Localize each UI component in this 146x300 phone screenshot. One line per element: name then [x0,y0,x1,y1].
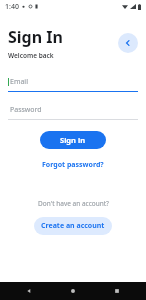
staticText: 1:40 [5,2,19,12]
button[interactable]: Home [58,282,88,300]
button[interactable]: Back [14,282,44,300]
staticText: Sign in [60,135,86,145]
button[interactable]: Recent apps [102,282,132,300]
staticText: Don't have an account? [38,199,109,208]
staticText: Create an account [41,221,105,231]
staticText: Welcome back [8,51,54,60]
button[interactable]: Password [8,105,138,120]
staticText: Password [10,105,42,115]
button[interactable]: Email [8,77,138,92]
button[interactable]: Sign in [40,131,106,149]
button[interactable]: Create an account [34,217,112,235]
button[interactable]: Back [118,33,138,53]
staticText: Forgot password? [42,160,104,170]
button[interactable]: Forgot password? [38,158,108,172]
staticText: Email [10,77,28,87]
staticText: Sign In [8,26,63,48]
